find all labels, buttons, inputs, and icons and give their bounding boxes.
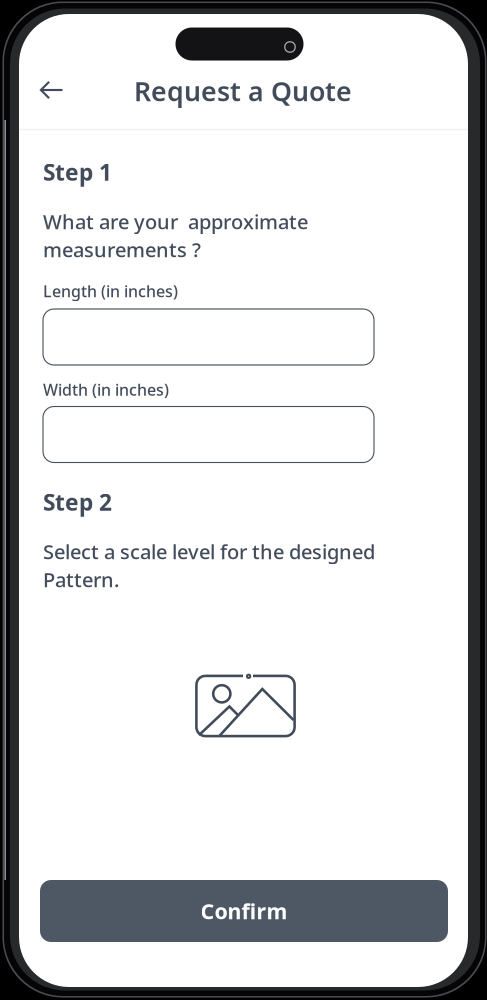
staticText: What are your approximate [43, 208, 308, 235]
button[interactable]: Back [26, 66, 76, 114]
staticText: Request a Quote [134, 73, 352, 109]
staticText: Select a scale level for the designed [43, 538, 375, 565]
staticText: Length (in inches) [43, 280, 178, 302]
staticText: Step 2 [43, 487, 112, 517]
staticText: measurements ? [43, 236, 201, 263]
staticText: Width (in inches) [43, 379, 169, 400]
staticText: Confirm [200, 897, 287, 925]
button[interactable]: Confirm [40, 880, 448, 942]
staticText: Pattern. [43, 566, 119, 593]
staticText: Step 1 [43, 157, 112, 187]
